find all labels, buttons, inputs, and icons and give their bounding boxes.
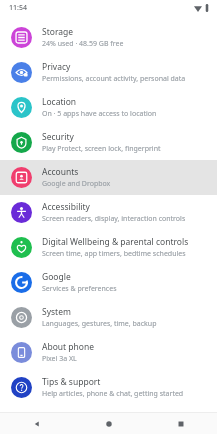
- staticText: Storage: [42, 26, 74, 38]
- staticText: Digital Wellbeing & parental controls: [42, 236, 189, 248]
- staticText: Security: [42, 131, 74, 143]
- button[interactable]: System: [0, 300, 217, 335]
- staticText: Privacy: [42, 61, 71, 73]
- button[interactable]: Tips & support: [0, 370, 217, 405]
- button[interactable]: About phone: [0, 335, 217, 370]
- button[interactable]: Location: [0, 90, 217, 125]
- staticText: Accessibility: [42, 201, 90, 213]
- staticText: Pixel 3a XL: [42, 354, 77, 364]
- button[interactable]: Storage: [0, 20, 217, 55]
- staticText: Services & preferences: [42, 284, 117, 294]
- button[interactable]: Digital Wellbeing & parental controls: [0, 230, 217, 265]
- staticText: Accounts: [42, 166, 79, 178]
- button[interactable]: Recent apps: [145, 413, 217, 434]
- staticText: Languages, gestures, time, backup: [42, 319, 157, 329]
- staticText: 24% used · 48.59 GB free: [42, 39, 124, 49]
- staticText: Google: [42, 271, 71, 283]
- staticText: Help articles, phone & chat, getting sta…: [42, 389, 184, 399]
- button[interactable]: Security: [0, 125, 217, 160]
- button[interactable]: Privacy: [0, 55, 217, 90]
- staticText: On · 5 apps have access to location: [42, 109, 157, 119]
- staticText: Google and Dropbox: [42, 179, 111, 189]
- staticText: Screen readers, display, interaction con…: [42, 214, 186, 224]
- button[interactable]: Google: [0, 265, 217, 300]
- button[interactable]: Home: [73, 413, 145, 434]
- staticText: Screen time, app timers, bedtime schedul…: [42, 249, 186, 259]
- staticText: About phone: [42, 341, 95, 353]
- button[interactable]: Back: [0, 413, 73, 434]
- staticText: Permissions, account activity, personal …: [42, 74, 186, 84]
- button[interactable]: Accounts: [0, 160, 217, 195]
- staticText: Location: [42, 96, 77, 108]
- staticText: 11:54: [9, 3, 27, 13]
- staticText: Play Protect, screen lock, fingerprint: [42, 144, 161, 154]
- staticText: Tips & support: [42, 376, 101, 388]
- button[interactable]: Accessibility: [0, 195, 217, 230]
- staticText: System: [42, 306, 71, 318]
